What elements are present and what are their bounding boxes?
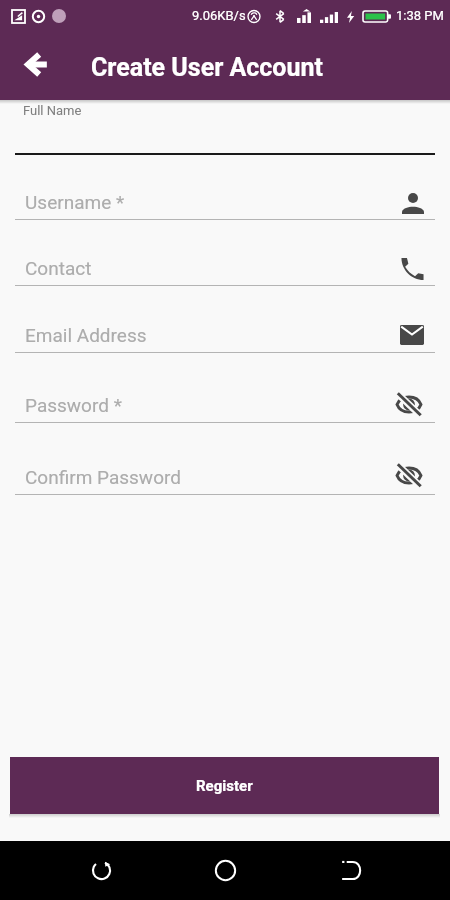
staticText: Confirm Password	[25, 466, 181, 488]
button[interactable]: Confirm Password	[0, 423, 450, 495]
button[interactable]: Recent apps	[71, 841, 131, 900]
staticText: Register	[196, 777, 253, 795]
staticText: Username *	[25, 191, 125, 213]
button[interactable]: Register	[10, 757, 439, 814]
button[interactable]: Back	[13, 41, 59, 87]
button[interactable]: Back	[320, 841, 380, 900]
staticText: Contact	[25, 257, 92, 279]
button[interactable]: Full Name	[0, 100, 450, 153]
button[interactable]: Home	[195, 841, 255, 900]
button[interactable]: Username *	[0, 153, 450, 220]
staticText: Create User Account	[91, 53, 323, 82]
staticText: Password *	[25, 394, 122, 416]
button[interactable]: Contact	[0, 220, 450, 286]
staticText: 1:38 PM	[396, 8, 444, 23]
staticText: Full Name	[23, 103, 82, 118]
button[interactable]: Password *	[0, 353, 450, 423]
button[interactable]: Email Address	[0, 286, 450, 353]
staticText: Email Address	[25, 324, 147, 346]
staticText: 9.06KB/s	[192, 8, 246, 23]
